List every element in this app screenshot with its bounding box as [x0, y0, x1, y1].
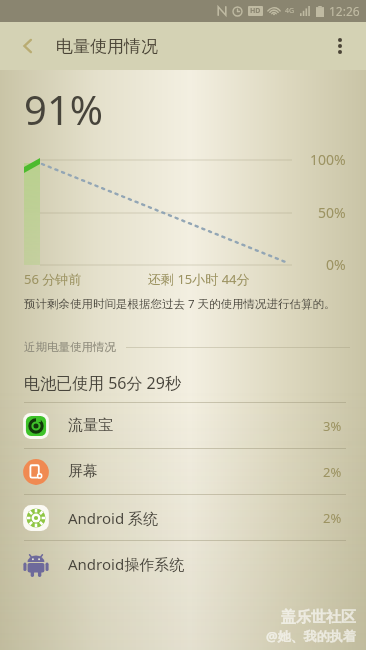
staticText: 屏幕	[68, 462, 98, 481]
staticText: @她、我的执着	[266, 627, 356, 645]
staticText: 3%	[323, 417, 342, 435]
button[interactable]: 流量宝	[0, 402, 366, 448]
staticText: 4G	[285, 6, 295, 16]
staticText: 盖乐世社区	[281, 608, 356, 627]
staticText: Android操作系统	[68, 554, 185, 574]
staticText: 电量使用情况	[56, 36, 158, 57]
staticText: 0%	[326, 255, 346, 274]
staticText: 电池已使用 56分 29秒	[24, 372, 181, 394]
staticText: 12:26	[329, 3, 360, 19]
staticText: 50%	[318, 203, 346, 222]
button[interactable]: 屏幕	[0, 448, 366, 494]
staticText: Android 系统	[68, 508, 159, 528]
staticText: 预计剩余使用时间是根据您过去 7 天的使用情况进行估算的。	[24, 296, 336, 312]
button[interactable]: Android操作系统	[0, 540, 366, 586]
staticText: 91%	[24, 82, 103, 136]
staticText: 近期电量使用情况	[24, 340, 116, 354]
staticText: 流量宝	[68, 416, 113, 435]
staticText: 还剩 15小时 44分	[148, 270, 250, 288]
button[interactable]: Android 系统	[0, 494, 366, 540]
staticText: HD	[250, 6, 261, 16]
button[interactable]: Back	[8, 26, 48, 66]
staticText: 2%	[323, 509, 342, 527]
staticText: 100%	[310, 150, 346, 169]
staticText: 56 分钟前	[24, 270, 82, 288]
button[interactable]: More options	[320, 26, 360, 66]
staticText: 2%	[323, 463, 342, 481]
